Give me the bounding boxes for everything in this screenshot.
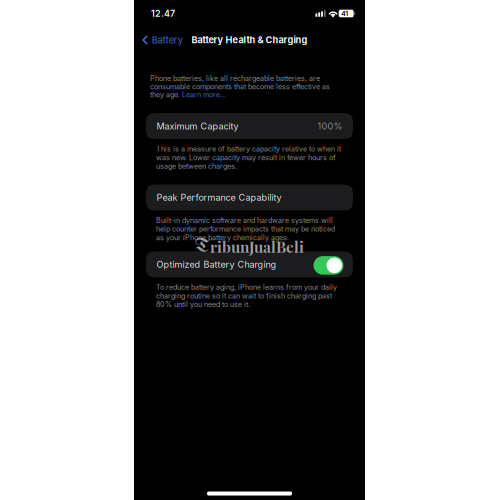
- staticText: To reduce battery aging, iPhone learns f…: [156, 283, 337, 309]
- staticText: 100%: [317, 121, 342, 132]
- staticText: This is a measure of battery capacity re…: [156, 145, 341, 170]
- staticText: 41: [341, 9, 348, 18]
- staticText: 12.47: [151, 8, 175, 19]
- staticText: Battery: [152, 34, 183, 46]
- staticText: Peak Performance Capability: [156, 192, 281, 203]
- button[interactable]: Learn more...: [182, 90, 226, 99]
- staticText: T: [195, 236, 210, 257]
- staticText: consumable components that become less e…: [150, 82, 330, 91]
- button[interactable]: Battery: [134, 30, 187, 50]
- staticText: Learn more...: [182, 90, 226, 99]
- staticText: Optimized Battery Charging: [156, 259, 276, 270]
- staticText: Maximum Capacity: [156, 121, 238, 132]
- staticText: ribunJualBeli: [210, 236, 304, 257]
- staticText: Phone batteries, like all rechargeable b…: [150, 74, 320, 83]
- staticText: they age.: [150, 90, 182, 99]
- staticText: Built-in dynamic software and hardware s…: [156, 216, 335, 242]
- staticText: Battery Health & Charging: [191, 34, 307, 45]
